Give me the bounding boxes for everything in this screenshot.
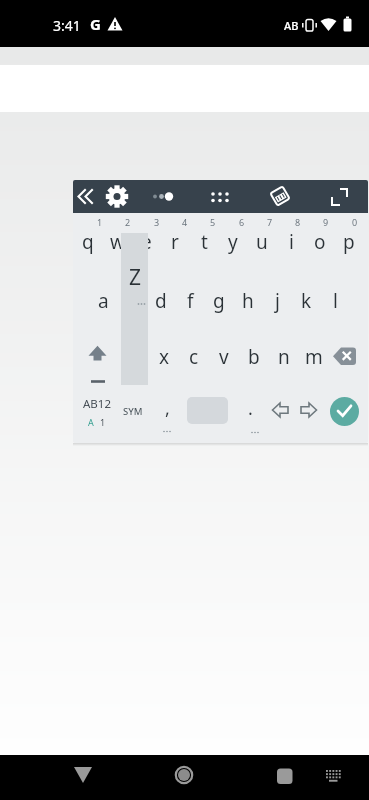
staticText: f: [187, 288, 194, 314]
staticText: G: [90, 14, 101, 34]
button[interactable]: j: [263, 284, 291, 318]
button[interactable]: k: [292, 284, 320, 318]
staticText: 9: [323, 216, 329, 228]
button[interactable]: [187, 397, 228, 424]
staticText: x: [159, 344, 170, 370]
staticText: r: [171, 229, 179, 255]
staticText: w: [110, 229, 125, 255]
staticText: .: [248, 396, 253, 421]
button[interactable]: [164, 758, 204, 798]
staticText: AB12: [83, 396, 111, 412]
button[interactable]: g: [205, 284, 233, 318]
staticText: 0: [352, 216, 358, 228]
button[interactable]: i: [277, 225, 305, 259]
button[interactable]: o: [306, 225, 334, 259]
button[interactable]: b: [240, 340, 268, 374]
button[interactable]: [264, 758, 304, 798]
staticText: j: [275, 288, 280, 314]
button[interactable]: x: [150, 340, 178, 374]
staticText: q: [82, 229, 94, 255]
staticText: 1: [100, 416, 106, 428]
staticText: g: [213, 288, 225, 314]
button[interactable]: q: [74, 225, 102, 259]
button[interactable]: e: [132, 225, 160, 259]
staticText: t: [201, 229, 208, 255]
button[interactable]: c: [180, 340, 208, 374]
button[interactable]: u: [248, 225, 276, 259]
staticText: Z: [129, 263, 142, 292]
button[interactable]: [63, 758, 103, 798]
staticText: 1: [97, 216, 103, 228]
staticText: m: [305, 344, 323, 370]
button[interactable]: AB12: [79, 395, 115, 413]
staticText: AB: [284, 18, 299, 33]
staticText: y: [228, 229, 238, 255]
staticText: c: [189, 344, 199, 370]
button[interactable]: f: [176, 284, 204, 318]
button[interactable]: m: [300, 340, 328, 374]
staticText: l: [333, 288, 338, 314]
staticText: d: [155, 288, 167, 314]
staticText: ,: [165, 396, 170, 421]
button[interactable]: d: [147, 284, 175, 318]
button[interactable]: l: [321, 284, 349, 318]
staticText: A: [88, 416, 94, 428]
staticText: p: [343, 229, 355, 255]
staticText: k: [301, 288, 312, 314]
button[interactable]: r: [161, 225, 189, 259]
button[interactable]: [316, 758, 352, 798]
staticText: e: [141, 229, 152, 255]
button[interactable]: s: [118, 284, 146, 318]
staticText: h: [242, 288, 254, 314]
staticText: a: [98, 288, 109, 314]
staticText: 4: [182, 216, 188, 228]
button[interactable]: p: [335, 225, 363, 259]
button[interactable]: SYM: [118, 401, 148, 421]
button[interactable]: [330, 397, 359, 426]
button[interactable]: n: [270, 340, 298, 374]
staticText: o: [314, 229, 326, 255]
staticText: 6: [239, 216, 245, 228]
staticText: 3: [154, 216, 160, 228]
staticText: i: [289, 229, 294, 255]
staticText: 5: [210, 216, 216, 228]
staticText: 2: [125, 216, 131, 228]
button[interactable]: t: [190, 225, 218, 259]
staticText: 8: [295, 216, 301, 228]
button[interactable]: .: [239, 393, 261, 423]
staticText: b: [248, 344, 260, 370]
button[interactable]: w: [103, 225, 131, 259]
button[interactable]: y: [219, 225, 247, 259]
staticText: 3:41: [53, 16, 81, 35]
button[interactable]: v: [210, 340, 238, 374]
staticText: v: [219, 344, 229, 370]
staticText: u: [256, 229, 268, 255]
button[interactable]: a: [89, 284, 117, 318]
button[interactable]: ,: [156, 393, 178, 423]
staticText: 7: [267, 216, 273, 228]
button[interactable]: h: [234, 284, 262, 318]
staticText: SYM: [123, 405, 143, 418]
staticText: n: [278, 344, 290, 370]
button[interactable]: [73, 180, 368, 213]
